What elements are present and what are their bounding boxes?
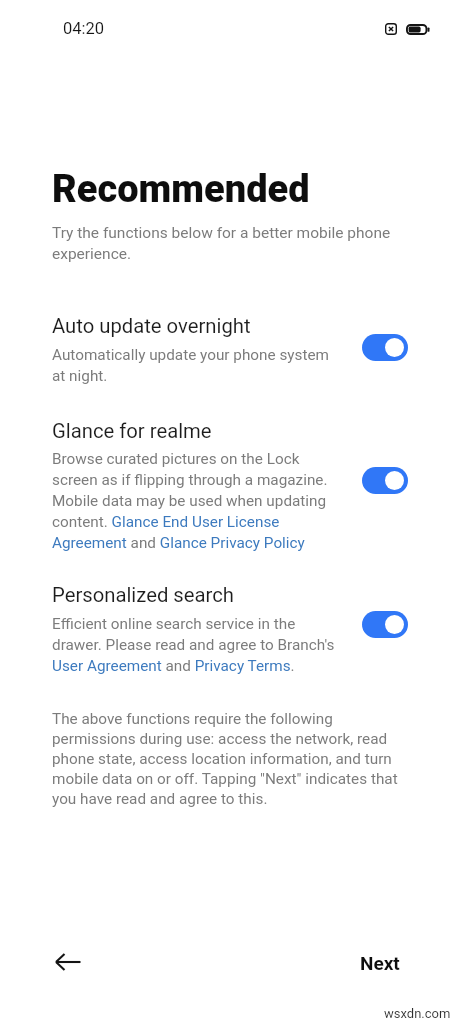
button[interactable]: Next	[349, 941, 411, 985]
button[interactable]	[52, 319, 407, 387]
staticText: Automatically update your phone system a…	[52, 344, 343, 386]
button[interactable]	[52, 424, 407, 554]
button[interactable]: Back	[44, 938, 92, 986]
button[interactable]: Auto update overnight toggle	[362, 334, 408, 361]
staticText: The above functions require the followin…	[52, 708, 408, 808]
staticText: Next	[360, 952, 400, 974]
button[interactable]: Glance for realme toggle	[362, 467, 408, 494]
button[interactable]: Personalized search toggle	[362, 611, 408, 638]
staticText: Glance for realme	[52, 419, 212, 443]
staticText: wsxdn.com	[384, 1006, 451, 1021]
button[interactable]	[52, 588, 407, 677]
staticText: Efficient online search service in the d…	[52, 613, 343, 676]
staticText: Auto update overnight	[52, 314, 251, 338]
staticText: 04:20	[63, 19, 105, 38]
staticText: Personalized search	[52, 583, 234, 607]
staticText: Try the functions below for a better mob…	[52, 222, 397, 264]
staticText: Recommended	[52, 167, 310, 212]
staticText: Browse curated pictures on the Lock scre…	[52, 448, 343, 553]
